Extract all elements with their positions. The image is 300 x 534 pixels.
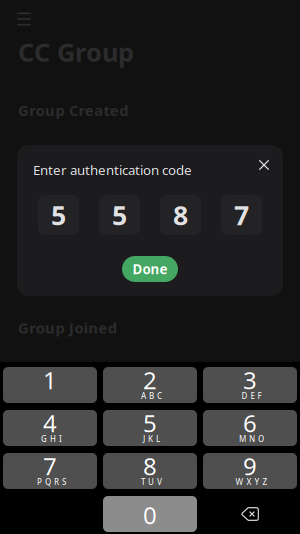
staticText: JKL [143, 434, 160, 444]
button[interactable]: 1 [3, 367, 97, 403]
staticText: 9 [243, 450, 257, 482]
button[interactable]: 0 [103, 496, 197, 532]
staticText: Done [132, 260, 167, 278]
staticText: Group Created [18, 101, 128, 120]
button[interactable]: 5 [103, 410, 197, 446]
staticText: 5 [51, 197, 66, 233]
staticText: TUV [141, 477, 162, 487]
staticText: MNO [239, 434, 264, 444]
staticText: 1 [43, 364, 57, 396]
staticText: 3 [243, 364, 257, 396]
button[interactable]: 8 [103, 453, 197, 489]
staticText: 6 [243, 407, 257, 439]
staticText: 8 [143, 450, 157, 482]
staticText: GHI [41, 434, 62, 444]
button[interactable]: Menu [0, 0, 35, 30]
staticText: 5 [143, 407, 157, 439]
staticText: Enter authentication code [33, 161, 192, 179]
button[interactable]: 9 [203, 453, 297, 489]
staticText: 7 [43, 450, 57, 482]
button[interactable]: 7 [3, 453, 97, 489]
button[interactable]: 6 [203, 410, 297, 446]
staticText: CC Group [18, 35, 134, 69]
button[interactable]: Delete [203, 496, 297, 532]
button[interactable]: 4 [3, 410, 97, 446]
button[interactable]: Close [253, 154, 275, 176]
staticText: PQRS [37, 477, 66, 487]
staticText: 2 [143, 364, 157, 396]
staticText: 4 [43, 407, 57, 439]
staticText: 5 [112, 197, 127, 233]
button[interactable]: 2 [103, 367, 197, 403]
staticText: 0 [143, 499, 157, 531]
staticText: ABC [141, 391, 162, 401]
button[interactable]: 3 [203, 367, 297, 403]
staticText: DEF [241, 391, 261, 401]
staticText: Group Joined [18, 318, 117, 338]
staticText: 7 [234, 197, 249, 233]
staticText: 8 [173, 197, 188, 233]
staticText: WXYZ [235, 477, 267, 487]
button[interactable]: Done [122, 256, 178, 282]
